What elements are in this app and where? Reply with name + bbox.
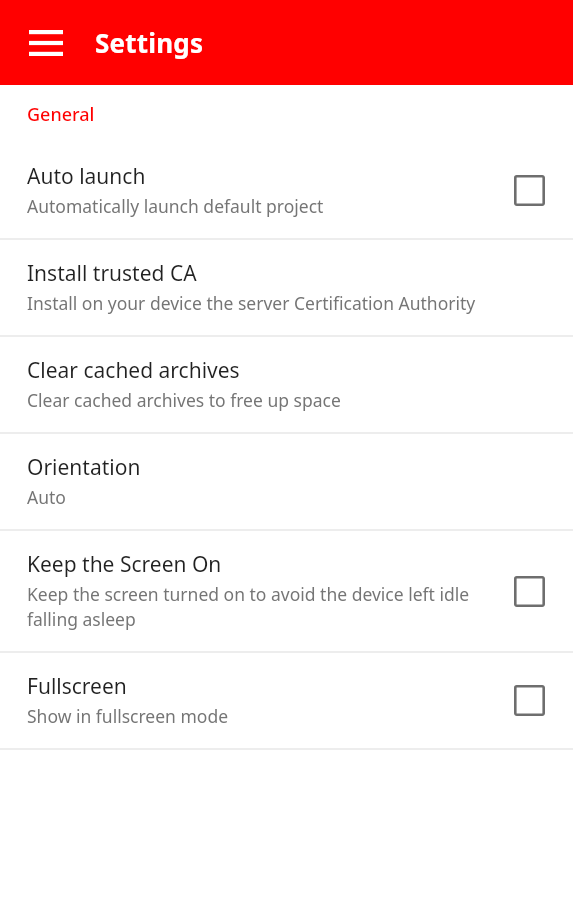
staticText: Fullscreen (27, 672, 127, 701)
staticText: Show in fullscreen mode (27, 704, 229, 728)
button[interactable]: Auto launch checkbox (505, 166, 553, 214)
staticText: Automatically launch default project (27, 194, 324, 218)
button[interactable]: Keep the Screen On checkbox (505, 567, 553, 615)
button[interactable]: Orientation (0, 434, 573, 529)
staticText: Clear cached archives to free up space (27, 388, 341, 412)
button[interactable]: Install trusted CA (0, 240, 573, 335)
staticText: Keep the Screen On (27, 550, 222, 579)
button[interactable]: Auto launch (0, 143, 573, 238)
button[interactable]: Clear cached archives (0, 337, 573, 432)
staticText: Clear cached archives (27, 356, 240, 385)
button[interactable]: Fullscreen (0, 653, 573, 748)
staticText: Auto (27, 485, 66, 509)
staticText: Orientation (27, 453, 141, 482)
staticText: Keep the screen turned on to avoid the d… (27, 582, 493, 631)
staticText: Settings (95, 25, 204, 60)
staticText: Install on your device the server Certif… (27, 291, 476, 315)
staticText: Install trusted CA (27, 259, 197, 288)
button[interactable]: Keep the Screen On (0, 531, 573, 651)
button[interactable]: Open navigation menu (21, 18, 71, 68)
button[interactable]: Fullscreen checkbox (505, 676, 553, 724)
staticText: Auto launch (27, 162, 146, 191)
staticText: General (27, 102, 95, 127)
